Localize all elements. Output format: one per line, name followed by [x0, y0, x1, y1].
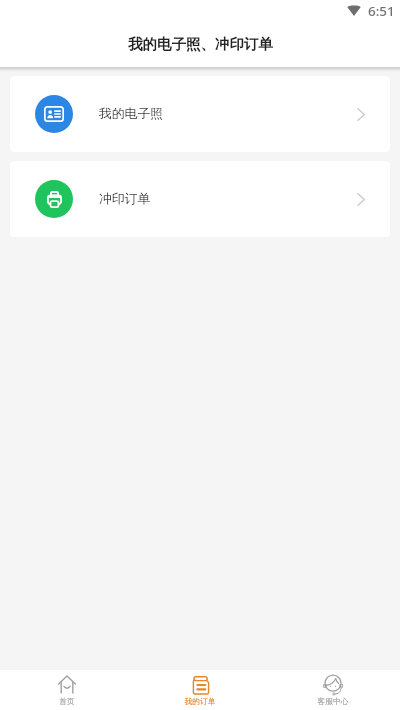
button[interactable]: 我的电子照: [10, 76, 390, 152]
staticText: 我的电子照: [99, 106, 163, 122]
button[interactable]: 我的订单: [150, 670, 250, 710]
staticText: 我的电子照、冲印订单: [128, 35, 273, 53]
staticText: 客服中心: [317, 696, 349, 706]
staticText: 6:51: [368, 2, 395, 20]
button[interactable]: 冲印订单: [10, 161, 390, 237]
staticText: 首页: [59, 696, 75, 706]
staticText: 冲印订单: [99, 191, 151, 207]
button[interactable]: 首页: [17, 670, 117, 710]
button[interactable]: 客服中心: [283, 670, 383, 710]
staticText: 我的订单: [184, 696, 216, 706]
